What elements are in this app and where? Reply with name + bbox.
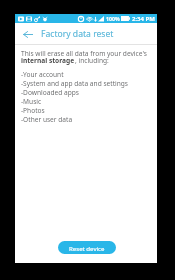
staticText: internal storage (21, 56, 75, 65)
staticText: -Other user data (21, 115, 73, 124)
staticText: Factory data reset (41, 28, 114, 40)
staticText: Reset device (69, 244, 105, 252)
staticText: -Your account (21, 70, 64, 79)
button[interactable]: Reset device (58, 241, 116, 254)
staticText: , including: (75, 56, 109, 65)
staticText: 2:34 PM (132, 15, 155, 23)
staticText: -Music (21, 97, 42, 106)
staticText: -Photos (21, 106, 45, 115)
staticText: -Downloaded apps (21, 88, 79, 97)
staticText: -System and app data and settings (21, 79, 129, 88)
staticText: 100% (106, 15, 120, 22)
staticText: This will erase all data from your devic… (21, 49, 147, 58)
button[interactable]: Back (19, 25, 37, 43)
